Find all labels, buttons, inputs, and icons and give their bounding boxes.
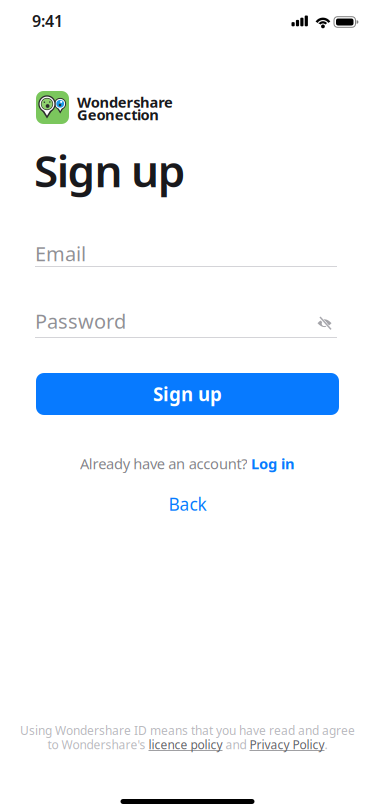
button[interactable]: Log in — [251, 454, 295, 473]
staticText: Privacy Policy — [249, 736, 324, 752]
staticText: . — [324, 736, 327, 752]
staticText: 9:41 — [32, 10, 63, 31]
button[interactable]: Privacy Policy — [249, 736, 324, 752]
staticText: Sign up — [153, 382, 222, 406]
staticText: licence policy — [148, 736, 222, 752]
staticText: Wondershare — [77, 92, 173, 112]
staticText: to Wondershare's — [47, 736, 148, 752]
staticText: and — [222, 736, 249, 752]
staticText: Back — [168, 492, 206, 515]
button[interactable]: Back — [168, 492, 206, 515]
staticText: Geonection — [77, 105, 159, 124]
staticText: Log in — [251, 454, 295, 473]
button[interactable]: Show password — [317, 316, 332, 330]
button[interactable]: licence policy — [148, 736, 222, 752]
staticText: Sign up — [34, 141, 186, 199]
staticText: Email — [35, 240, 86, 267]
button[interactable]: Sign up — [36, 373, 339, 415]
staticText: Already have an account? — [80, 454, 251, 473]
staticText: Password — [35, 308, 126, 334]
staticText: Using Wondershare ID means that you have… — [20, 722, 355, 738]
